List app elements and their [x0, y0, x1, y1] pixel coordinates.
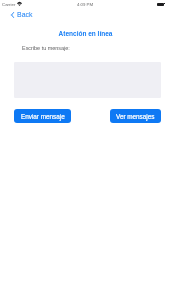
button[interactable]: Enviar mensaje	[14, 109, 71, 123]
button[interactable]: Ver mensajes	[110, 109, 161, 123]
other: Battery full	[157, 3, 164, 6]
staticText: Enviar mensaje	[21, 113, 65, 120]
staticText: 4:09 PM	[77, 2, 94, 7]
staticText: Back	[17, 11, 33, 19]
button[interactable]: Back	[9, 10, 35, 20]
staticText: Atención en línea	[1, 30, 169, 37]
other: Wi-Fi signal	[17, 2, 22, 6]
staticText: Carrier	[2, 2, 16, 7]
staticText: Ver mensajes	[116, 113, 155, 120]
staticText: Escribe tu mensaje:	[22, 45, 70, 51]
